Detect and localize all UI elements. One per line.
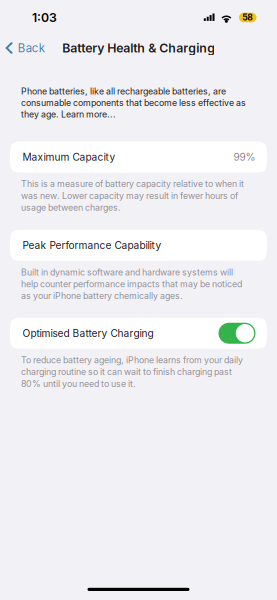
staticText: 99% <box>233 151 255 163</box>
staticText: 58 <box>242 12 253 23</box>
staticText: Peak Performance Capability <box>22 239 161 252</box>
staticText: This is a measure of battery capacity re… <box>21 178 244 213</box>
staticText: Optimised Battery Charging <box>22 327 153 339</box>
staticText: Battery Health & Charging <box>62 40 215 55</box>
button[interactable]: Optimised Battery Charging <box>10 318 267 349</box>
button[interactable]: Maximum Capacity <box>10 141 267 172</box>
button[interactable]: Back <box>0 35 53 61</box>
staticText: To reduce battery ageing, iPhone learns … <box>21 355 243 389</box>
staticText: Maximum Capacity <box>22 151 115 163</box>
staticText: Phone batteries, like all rechargeable b… <box>21 86 246 119</box>
staticText: Built in dynamic software and hardware s… <box>21 267 242 301</box>
button[interactable]: Peak Performance Capability <box>10 230 267 261</box>
staticText: Back <box>18 41 45 55</box>
staticText: 1:03 <box>32 10 57 25</box>
